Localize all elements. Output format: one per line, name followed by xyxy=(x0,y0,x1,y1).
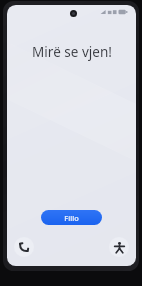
staticText: Fillo xyxy=(64,213,79,223)
button[interactable]: Emergency call xyxy=(14,237,34,257)
button[interactable]: Fillo xyxy=(41,210,102,225)
button[interactable]: Accessibility xyxy=(109,237,129,257)
staticText: Mirë se vjen! xyxy=(32,43,112,61)
